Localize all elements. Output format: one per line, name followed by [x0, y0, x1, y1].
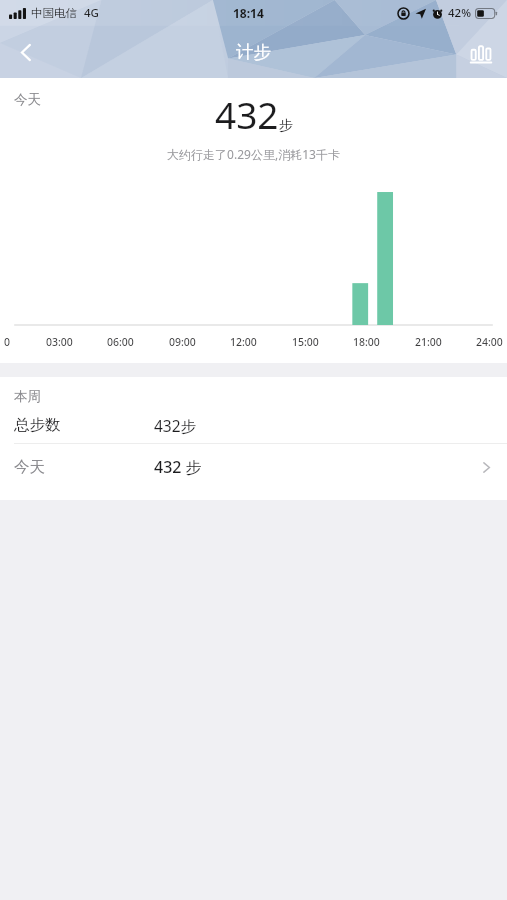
staticText: 432 [215, 89, 279, 139]
staticText: 42% [448, 5, 471, 21]
button[interactable]: 今天 [0, 444, 507, 490]
staticText: 总步数 [14, 415, 154, 435]
button[interactable]: Back [0, 26, 52, 78]
staticText: 今天 [14, 91, 41, 108]
staticText: 今天 [14, 457, 154, 477]
staticText: 18:00 [353, 335, 380, 349]
staticText: 432 步 [154, 456, 202, 478]
staticText: 4G [84, 5, 99, 21]
staticText: 计步 [236, 41, 271, 63]
staticText: 本周 [14, 388, 41, 405]
staticText: 18:14 [233, 5, 264, 21]
staticText: 大约行走了0.29公里,消耗13千卡 [167, 146, 340, 162]
staticText: 步 [279, 117, 293, 135]
staticText: 09:00 [169, 335, 196, 349]
staticText: 06:00 [107, 335, 134, 349]
staticText: 中国电信 [31, 6, 77, 20]
staticText: 21:00 [415, 335, 442, 349]
staticText: 432步 [154, 415, 197, 436]
staticText: 24:00 [476, 335, 503, 349]
staticText: 0 [4, 335, 11, 349]
staticText: 12:00 [230, 335, 257, 349]
button[interactable]: Statistics [455, 26, 507, 78]
button[interactable]: 总步数 [0, 407, 507, 443]
staticText: 03:00 [46, 335, 73, 349]
staticText: 15:00 [292, 335, 319, 349]
